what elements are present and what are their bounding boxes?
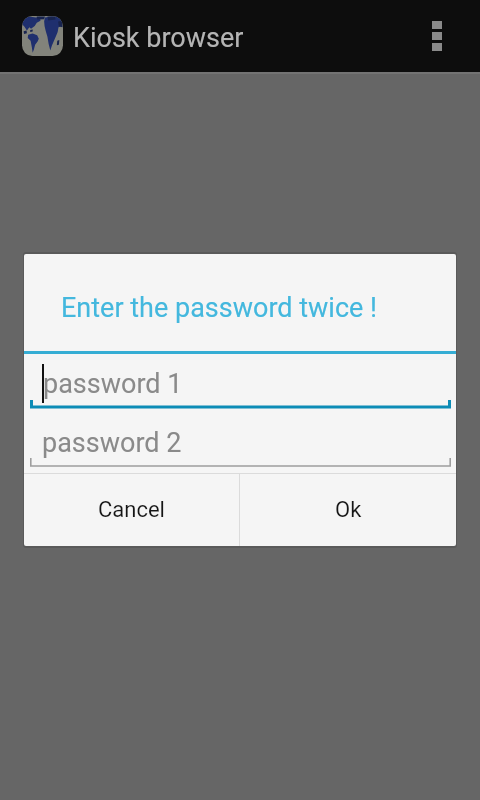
button[interactable] [30,357,451,410]
button[interactable]: Cancel [24,474,239,546]
staticText: Cancel [98,497,165,523]
button[interactable]: More options [394,0,480,72]
button[interactable] [30,414,451,467]
staticText: Enter the password twice ! [61,292,377,324]
staticText: Ok [335,497,362,523]
button[interactable]: Kiosk browser [0,0,257,72]
staticText: password 1 [43,368,183,400]
button[interactable]: Ok [240,474,456,546]
staticText: Kiosk browser [73,22,244,54]
staticText: password 2 [42,427,182,459]
